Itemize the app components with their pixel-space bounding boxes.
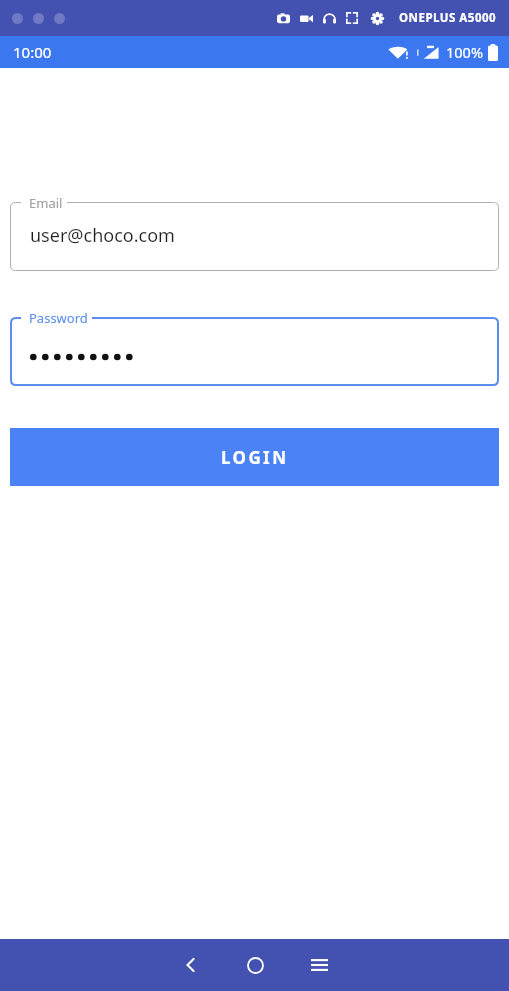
button[interactable]: Recent apps (293, 939, 345, 991)
staticText: 10:00 (13, 42, 52, 62)
staticText: user@choco.com (30, 223, 175, 248)
staticText: Email (29, 194, 63, 212)
staticText: Password (29, 309, 88, 327)
button[interactable]: Email (10, 193, 499, 271)
staticText: ONEPLUS A5000 (399, 10, 497, 26)
button[interactable]: Back (165, 939, 217, 991)
staticText: 100% (446, 42, 483, 62)
staticText: LOGIN (221, 446, 289, 469)
button[interactable]: Password (10, 308, 499, 386)
button[interactable]: Home (229, 939, 281, 991)
button[interactable]: LOGIN (10, 428, 499, 486)
